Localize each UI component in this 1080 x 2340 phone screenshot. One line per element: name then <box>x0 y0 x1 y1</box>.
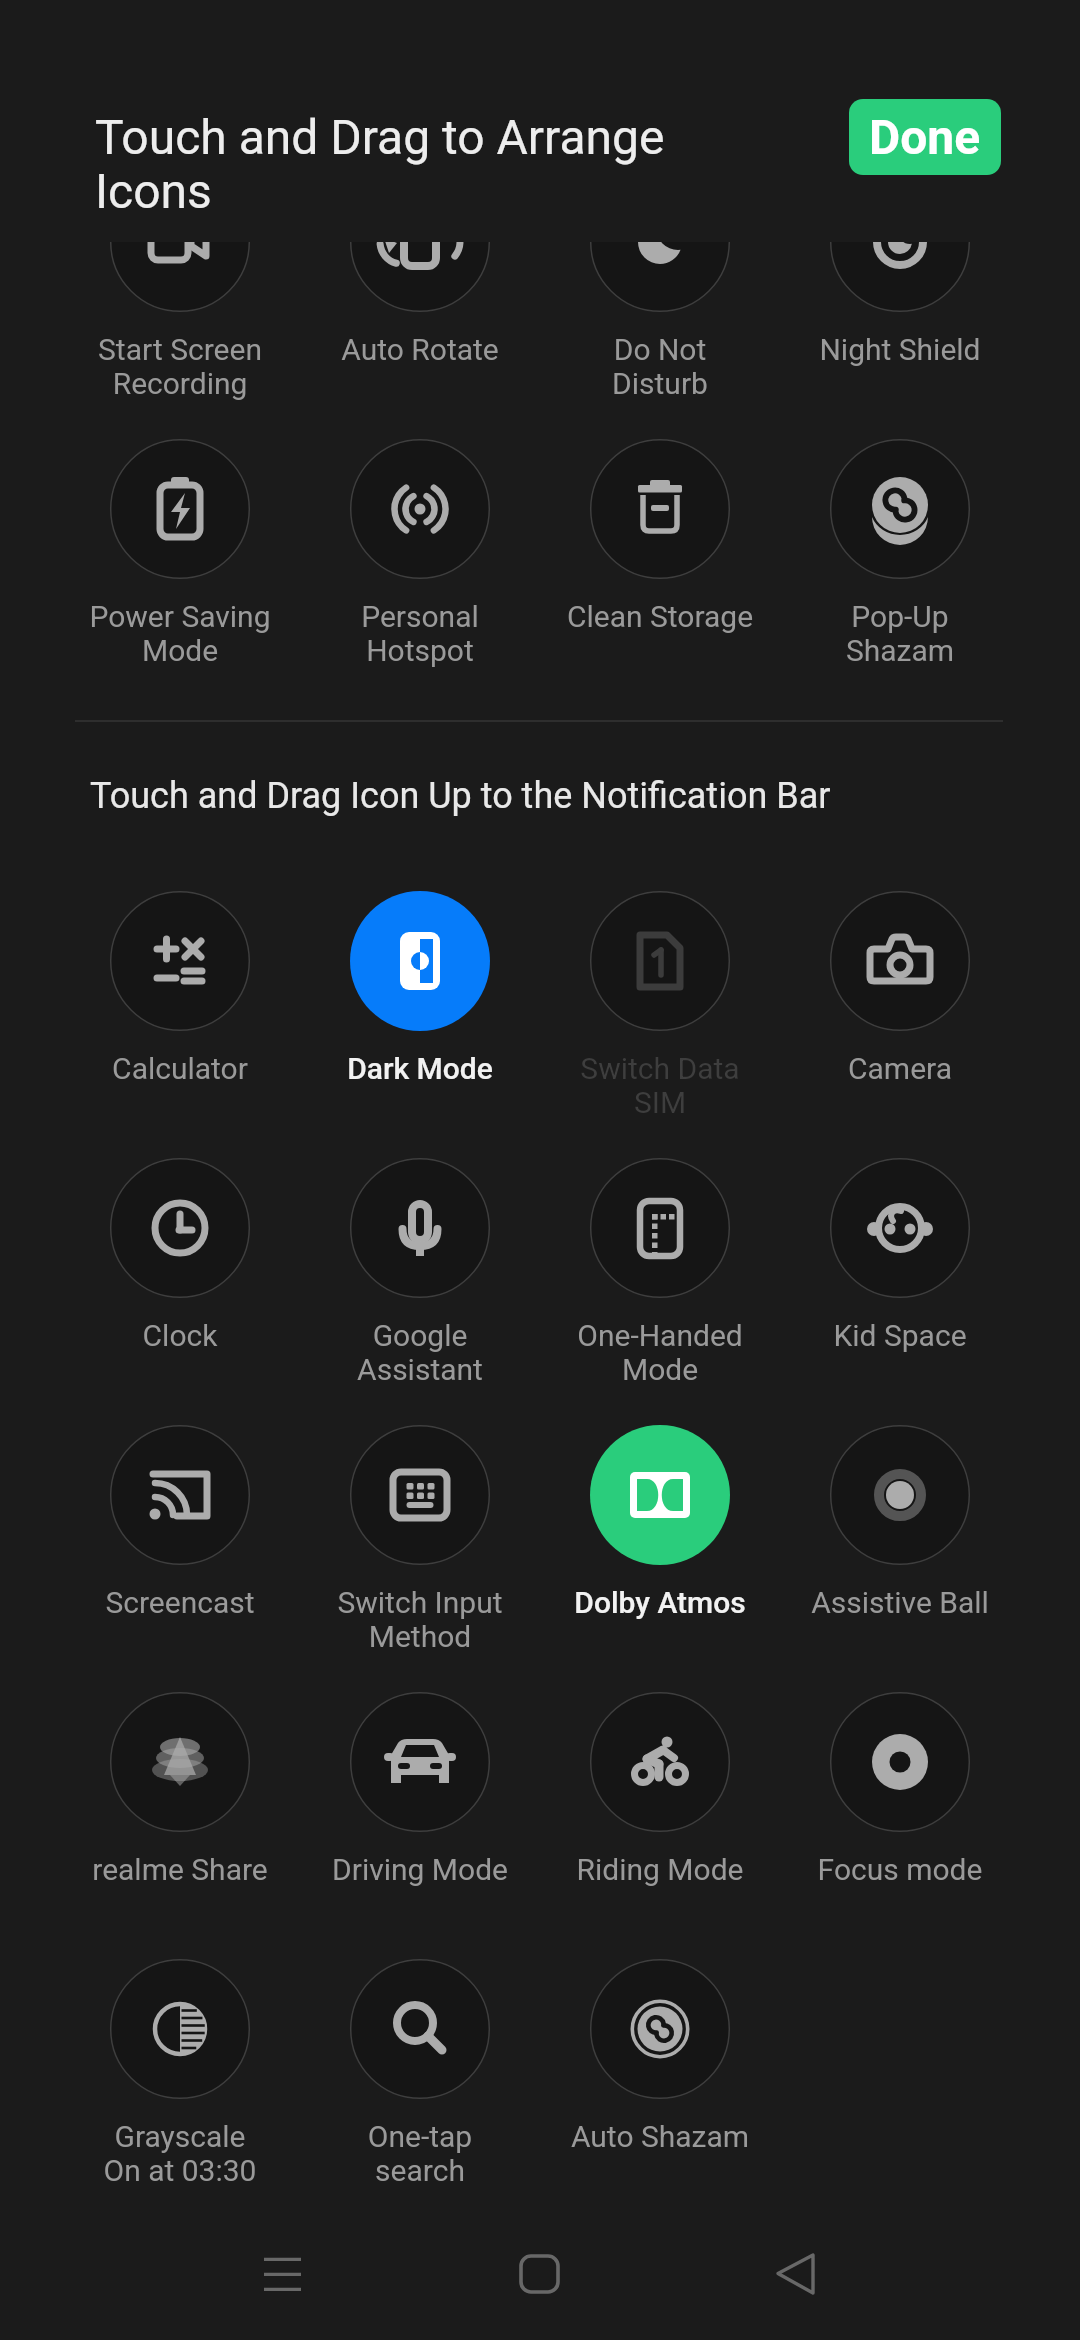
button[interactable]: Night Shield <box>790 172 1010 382</box>
staticText: Riding Mode <box>550 1852 770 1887</box>
staticText: Camera <box>790 1051 1010 1086</box>
staticText: Assistive Ball <box>790 1585 1010 1620</box>
staticText: Dolby Atmos <box>550 1585 770 1620</box>
button[interactable]: Clean Storage <box>550 439 770 649</box>
button[interactable]: Dolby Atmos <box>550 1425 770 1635</box>
button[interactable]: Screencast <box>70 1425 290 1635</box>
button[interactable]: realme Share <box>70 1692 290 1902</box>
button[interactable]: Switch Data SIM <box>550 891 770 1101</box>
button[interactable]: Start Screen Recording <box>70 172 290 382</box>
button[interactable]: Home <box>502 2234 578 2314</box>
staticText: Screencast <box>70 1585 290 1620</box>
staticText: realme Share <box>70 1852 290 1887</box>
staticText: Kid Space <box>790 1318 1010 1353</box>
staticText: Dark Mode <box>310 1051 530 1086</box>
staticText: Done <box>869 109 981 165</box>
button[interactable]: Back <box>757 2234 833 2314</box>
button[interactable]: Riding Mode <box>550 1692 770 1902</box>
button[interactable]: Clock <box>70 1158 290 1368</box>
staticText: Grayscale On at 03:30 <box>70 2119 290 2188</box>
button[interactable]: Camera <box>790 891 1010 1101</box>
staticText: Touch and Drag Icon Up to the Notificati… <box>90 775 831 817</box>
button[interactable]: Power Saving Mode <box>70 439 290 649</box>
staticText: Personal Hotspot <box>310 599 530 668</box>
staticText: Switch Input Method <box>310 1585 530 1654</box>
button[interactable]: Dark Mode <box>310 891 530 1101</box>
staticText: Auto Shazam <box>550 2119 770 2154</box>
staticText: Clock <box>70 1318 290 1353</box>
button[interactable]: Recent apps <box>244 2234 320 2314</box>
button[interactable]: Google Assistant <box>310 1158 530 1368</box>
staticText: Auto Rotate <box>310 332 530 367</box>
staticText: One-Handed Mode <box>550 1318 770 1387</box>
button[interactable]: Switch Input Method <box>310 1425 530 1635</box>
button[interactable]: One-tap search <box>310 1959 530 2169</box>
staticText: Pop-Up Shazam <box>790 599 1010 668</box>
staticText: Power Saving Mode <box>70 599 290 668</box>
button[interactable]: Auto Rotate <box>310 172 530 382</box>
button[interactable]: Focus mode <box>790 1692 1010 1902</box>
button[interactable]: Driving Mode <box>310 1692 530 1902</box>
button[interactable]: Calculator <box>70 891 290 1101</box>
staticText: Touch and Drag to Arrange Icons <box>95 109 775 219</box>
staticText: One-tap search <box>310 2119 530 2188</box>
button[interactable]: Done <box>849 99 1001 175</box>
button[interactable]: Assistive Ball <box>790 1425 1010 1635</box>
button[interactable]: Pop-Up Shazam <box>790 439 1010 649</box>
staticText: Calculator <box>70 1051 290 1086</box>
button[interactable]: Kid Space <box>790 1158 1010 1368</box>
button[interactable]: Do Not Disturb <box>550 172 770 382</box>
staticText: Google Assistant <box>310 1318 530 1387</box>
staticText: Switch Data SIM <box>550 1051 770 1120</box>
staticText: Start Screen Recording <box>70 332 290 401</box>
button[interactable]: One-Handed Mode <box>550 1158 770 1368</box>
staticText: Driving Mode <box>310 1852 530 1887</box>
staticText: Focus mode <box>790 1852 1010 1887</box>
button[interactable]: Personal Hotspot <box>310 439 530 649</box>
staticText: Clean Storage <box>550 599 770 634</box>
staticText: Night Shield <box>790 332 1010 367</box>
staticText: Do Not Disturb <box>550 332 770 401</box>
button[interactable]: Grayscale On at 03:30 <box>70 1959 290 2169</box>
button[interactable]: Auto Shazam <box>550 1959 770 2169</box>
